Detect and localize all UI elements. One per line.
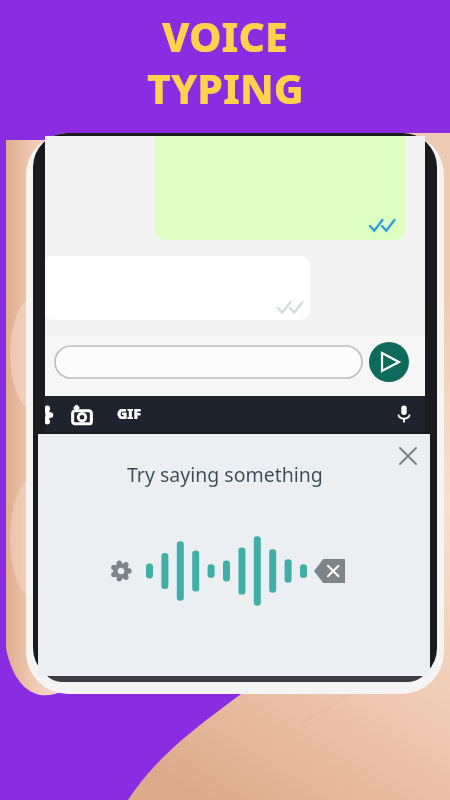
button[interactable]: Close xyxy=(393,441,423,471)
button[interactable]: Backspace xyxy=(312,556,348,586)
button[interactable]: Voice input xyxy=(390,400,418,428)
button[interactable]: Send xyxy=(369,342,411,384)
staticText: GIF xyxy=(117,404,142,423)
button[interactable]: Message input xyxy=(55,344,362,378)
staticText: VOICE xyxy=(162,8,288,64)
button[interactable]: GIF keyboard xyxy=(117,404,142,423)
button[interactable]: Camera xyxy=(68,400,96,428)
staticText: Try saying something xyxy=(127,461,323,488)
button[interactable]: Voice settings xyxy=(107,557,135,585)
staticText: TYPING xyxy=(147,60,304,116)
button[interactable]: Settings xyxy=(28,400,56,428)
